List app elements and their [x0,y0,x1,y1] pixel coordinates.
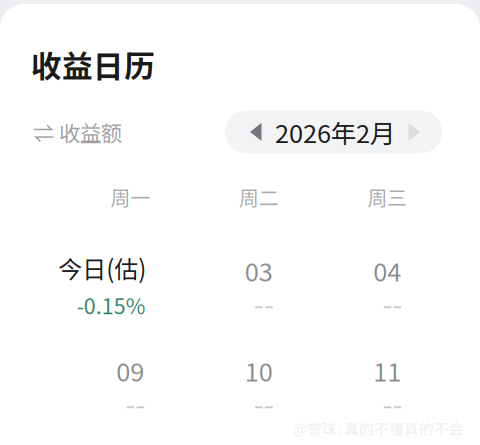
staticText: 11 [373,352,401,389]
button[interactable]: 11 [323,355,451,417]
staticText: -- [382,281,402,324]
staticText: -- [254,281,274,324]
staticText: 2026年2月 [275,114,395,150]
button[interactable]: 2026年2月 [225,110,442,153]
staticText: 今日(估) [58,250,146,285]
button[interactable]: 03 [194,255,323,317]
staticText: -0.15% [77,289,146,320]
staticText: 09 [116,352,144,389]
staticText: ⇌ 收益额 [33,116,122,147]
button[interactable]: 09 [66,355,194,417]
staticText: 周一 [110,182,150,211]
button[interactable]: 今日(估) [66,255,194,317]
staticText: 03 [245,252,273,289]
staticText: 04 [373,252,401,289]
staticText: @雪球: 真的不懂真的不会 [293,417,464,439]
staticText: 周二 [239,182,279,211]
staticText: -- [382,381,402,424]
staticText: 周三 [367,182,407,211]
staticText: -- [254,381,274,424]
button[interactable]: 10 [194,355,323,417]
staticText: -- [125,381,145,424]
staticText: 10 [245,352,273,389]
staticText: 收益日历 [31,42,155,86]
button[interactable]: ⇌ 收益额 [33,110,122,153]
button[interactable]: 04 [323,255,451,317]
